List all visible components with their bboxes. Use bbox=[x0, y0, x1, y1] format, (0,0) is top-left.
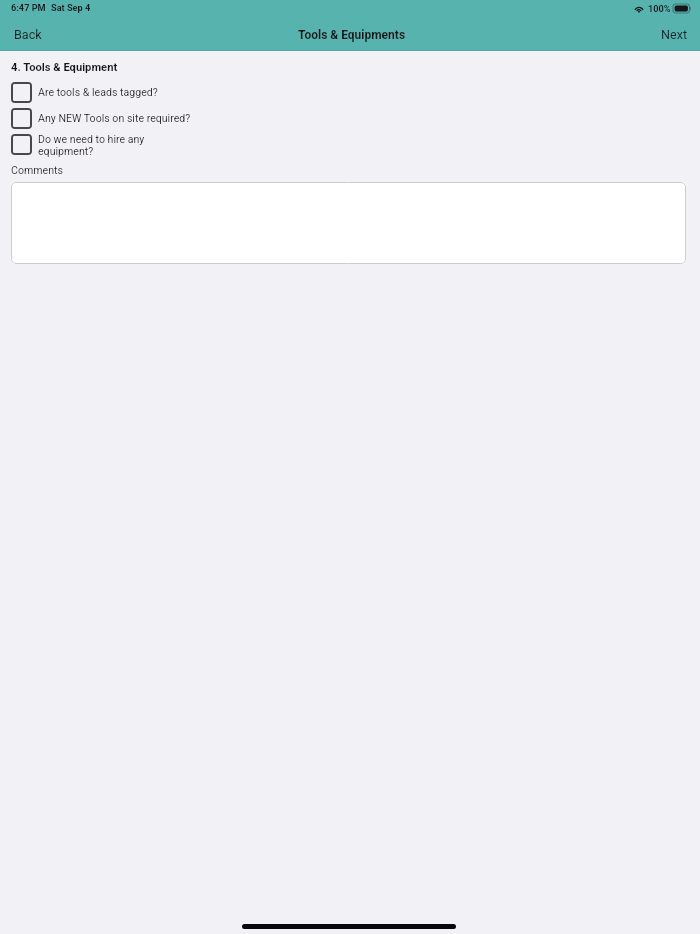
button[interactable] bbox=[11, 82, 686, 103]
button[interactable] bbox=[11, 108, 686, 129]
other: Battery full bbox=[673, 4, 692, 13]
staticText: Sat Sep 4 bbox=[51, 2, 91, 13]
staticText: Comments bbox=[11, 164, 63, 176]
other: Wi-Fi bbox=[634, 4, 644, 13]
staticText: Tools & Equipments bbox=[298, 28, 406, 42]
staticText: 4. Tools & Equipment bbox=[11, 61, 118, 74]
button[interactable] bbox=[11, 134, 686, 155]
staticText: 6:47 PM bbox=[11, 2, 46, 13]
button[interactable]: Next bbox=[651, 20, 698, 49]
staticText: Back bbox=[14, 27, 42, 42]
button[interactable]: Back bbox=[4, 20, 52, 49]
button[interactable]: Comments input bbox=[11, 182, 686, 264]
staticText: Any NEW Tools on site required? bbox=[38, 113, 191, 125]
staticText: 100% bbox=[648, 3, 671, 14]
staticText: Are tools & leads tagged? bbox=[38, 87, 158, 99]
staticText: Next bbox=[661, 27, 688, 42]
staticText: Do we need to hire any equipment? bbox=[38, 134, 145, 158]
